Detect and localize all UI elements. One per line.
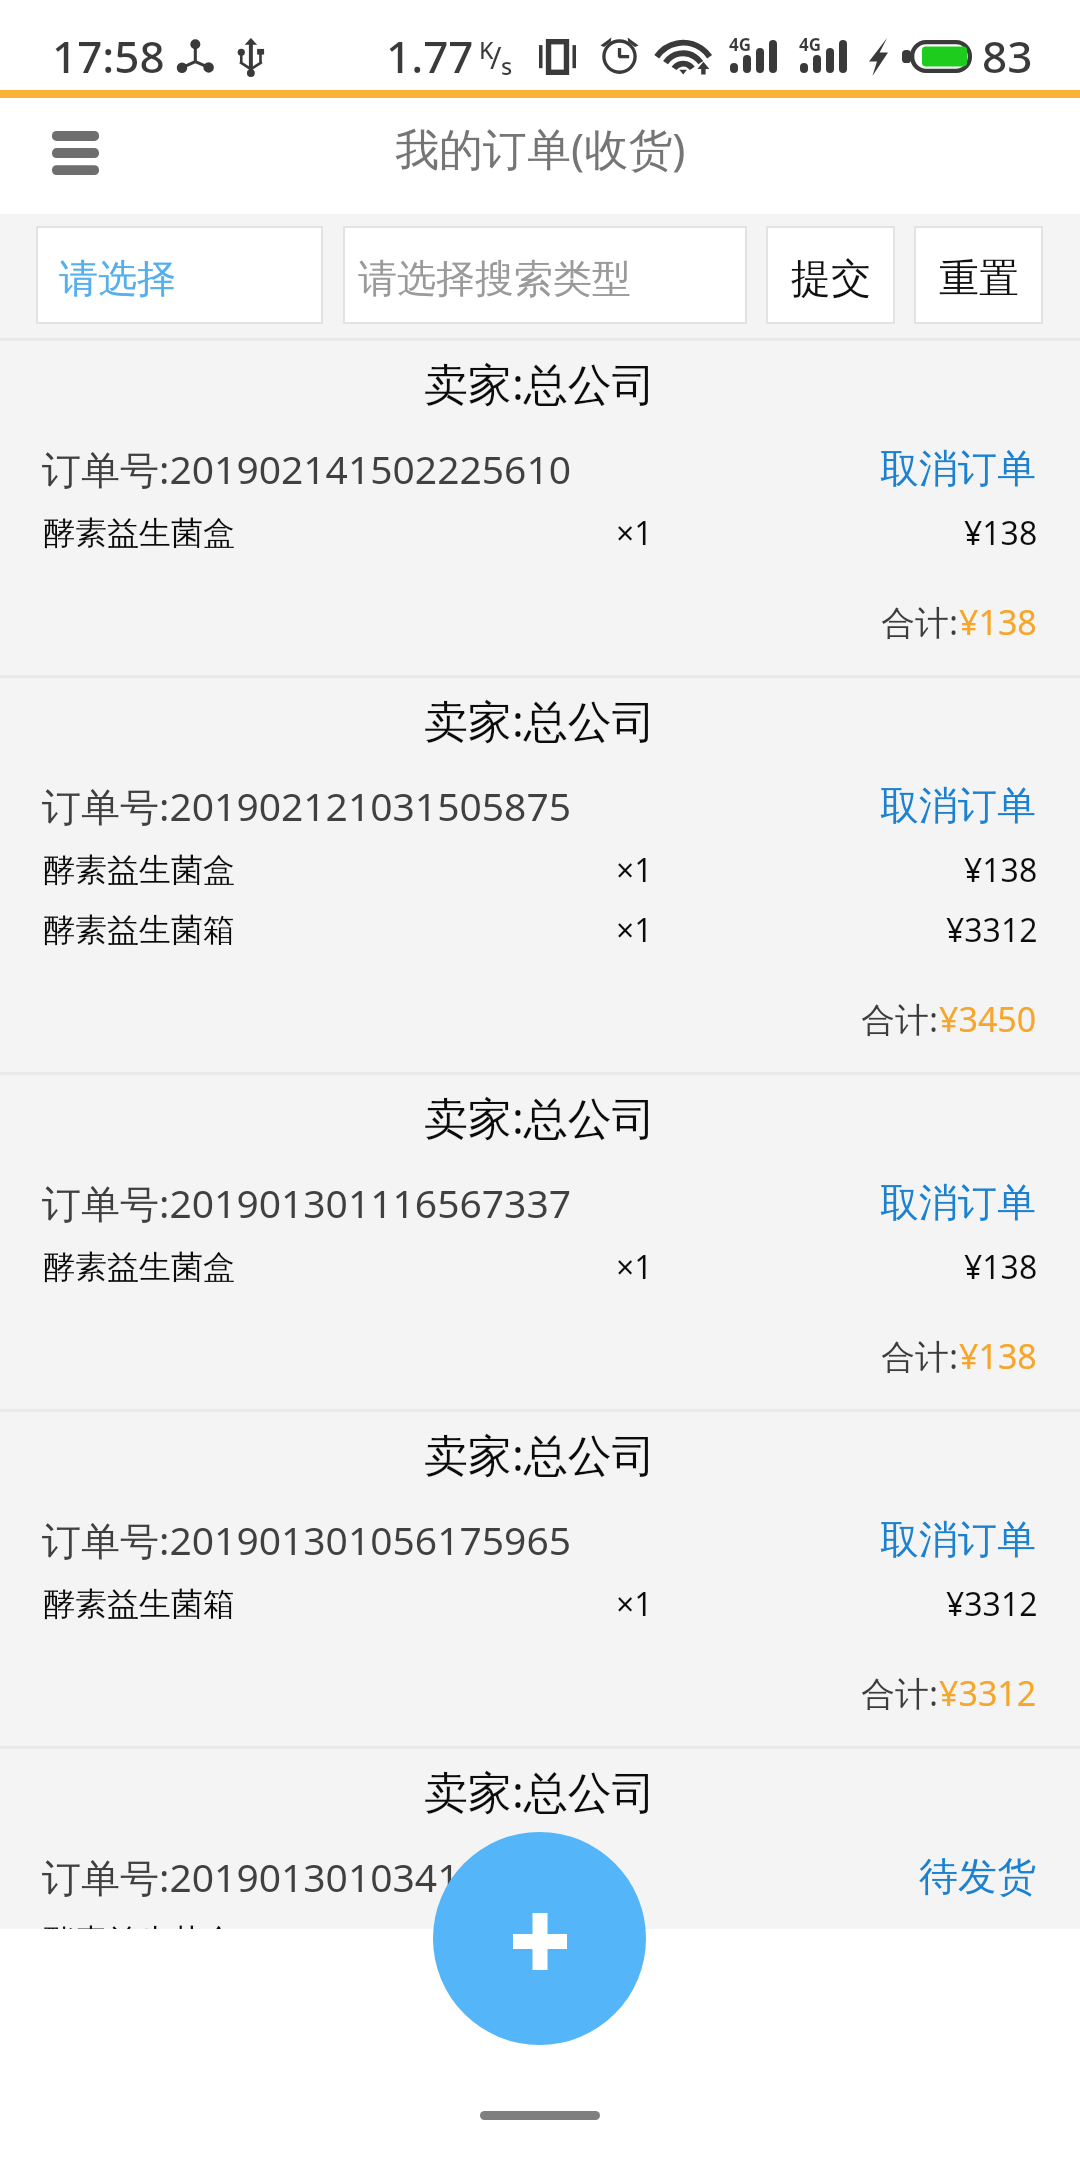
staticText: 卖家:总公司	[424, 1087, 656, 1147]
staticText: ×1	[616, 1582, 653, 1626]
staticText: 取消订单	[880, 444, 1036, 493]
button[interactable]: 请选择	[36, 226, 323, 324]
staticText: 83	[982, 26, 1033, 86]
button[interactable]: 卖家:总公司	[0, 1412, 1080, 1749]
button[interactable]: 取消订单	[880, 1178, 1036, 1227]
staticText: ¥3312	[946, 908, 1038, 952]
staticText: 合计:	[881, 599, 959, 645]
staticText: ¥138	[959, 1333, 1037, 1379]
staticText: 合计:	[861, 996, 939, 1042]
button[interactable]: 待发货	[919, 1852, 1036, 1901]
button[interactable]: 卖家:总公司	[0, 678, 1080, 1075]
staticText: 合计:	[881, 1333, 959, 1379]
staticText: ¥138	[964, 848, 1038, 892]
staticText: 卖家:总公司	[424, 690, 656, 750]
staticText: 订单号:201901301034166182	[42, 1850, 571, 1903]
button[interactable]: 提交	[766, 226, 895, 324]
staticText: ¥138	[964, 511, 1038, 555]
staticText: 酵素益生菌箱	[43, 1584, 235, 1624]
button[interactable]: 取消订单	[880, 444, 1036, 493]
button[interactable]: 取消订单	[880, 781, 1036, 830]
staticText: 17:58	[52, 26, 165, 86]
staticText: 订单号:201901301116567337	[42, 1176, 571, 1229]
staticText: ×1	[616, 511, 653, 555]
staticText: 订单号:201901301056175965	[42, 1513, 571, 1566]
staticText: ×1	[616, 1245, 653, 1289]
staticText: ¥138	[964, 1245, 1038, 1289]
button[interactable]: 菜单	[30, 108, 120, 198]
staticText: 订单号:201902121031505875	[42, 779, 571, 832]
staticText: 合计:	[861, 1670, 939, 1716]
button[interactable]: 新增订单	[433, 1832, 646, 2045]
staticText: 酵素益生菌盒	[43, 1921, 235, 1929]
staticText: 酵素益生菌盒	[43, 1247, 235, 1287]
staticText: ¥3312	[946, 1582, 1038, 1626]
staticText: K	[479, 34, 494, 65]
staticText: s	[501, 50, 513, 81]
staticText: 取消订单	[880, 1515, 1036, 1564]
staticText: 酵素益生菌盒	[43, 850, 235, 890]
staticText: 4G	[729, 33, 752, 56]
staticText: 我的订单(收货)	[395, 118, 686, 178]
staticText: 待发货	[919, 1852, 1036, 1901]
staticText: 提交	[791, 253, 871, 303]
button[interactable]: 取消订单	[880, 1515, 1036, 1564]
button[interactable]: 卖家:总公司	[0, 1749, 1080, 1929]
button[interactable]: 卖家:总公司	[0, 1075, 1080, 1412]
staticText: 酵素益生菌箱	[43, 910, 235, 950]
staticText: ¥3450	[939, 996, 1037, 1042]
staticText: 取消订单	[880, 1178, 1036, 1227]
staticText: 4G	[799, 33, 822, 56]
staticText: 取消订单	[880, 781, 1036, 830]
staticText: /	[490, 36, 502, 78]
staticText: 酵素益生菌盒	[43, 513, 235, 553]
staticText: 卖家:总公司	[424, 353, 656, 413]
staticText: 请选择搜索类型	[358, 254, 631, 303]
button[interactable]: 卖家:总公司	[0, 341, 1080, 678]
staticText: 卖家:总公司	[424, 1761, 656, 1821]
staticText: ×1	[616, 908, 653, 952]
staticText: ¥3312	[939, 1670, 1037, 1716]
staticText: ¥138	[959, 599, 1037, 645]
staticText: 订单号:201902141502225610	[42, 442, 571, 495]
button[interactable]: 请选择搜索类型	[343, 226, 747, 324]
staticText: 1.77	[386, 26, 474, 86]
staticText: 卖家:总公司	[424, 1424, 656, 1484]
staticText: 重置	[939, 253, 1019, 303]
staticText: 请选择	[59, 254, 176, 303]
staticText: ×1	[616, 848, 653, 892]
button[interactable]: 重置	[914, 226, 1043, 324]
